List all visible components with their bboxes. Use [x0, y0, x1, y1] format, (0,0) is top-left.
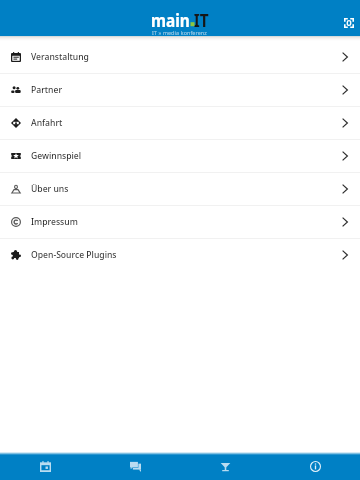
button[interactable]: Über uns [0, 173, 360, 206]
staticText: Anfahrt [31, 117, 63, 129]
staticText: Open-Source Plugins [31, 249, 117, 261]
staticText: IT » media konferenz [152, 29, 207, 37]
button[interactable]: Chat [90, 455, 180, 480]
staticText: Partner [31, 84, 63, 96]
button[interactable]: Scan QR code [338, 12, 360, 34]
button[interactable]: Veranstaltung [0, 41, 360, 74]
staticText: Impressum [31, 216, 78, 228]
staticText: IT [194, 8, 209, 33]
button[interactable]: Impressum [0, 206, 360, 239]
staticText: main [151, 8, 190, 33]
button[interactable]: Anfahrt [0, 107, 360, 140]
button[interactable]: Info [270, 455, 360, 480]
button[interactable]: Open-Source Plugins [0, 239, 360, 272]
button[interactable]: Gewinnspiel [0, 140, 360, 173]
staticText: Über uns [31, 183, 69, 195]
button[interactable]: Partner [0, 74, 360, 107]
button[interactable]: Party [180, 455, 270, 480]
staticText: Veranstaltung [31, 51, 89, 63]
button[interactable]: Events [0, 455, 90, 480]
staticText: Gewinnspiel [31, 150, 82, 162]
